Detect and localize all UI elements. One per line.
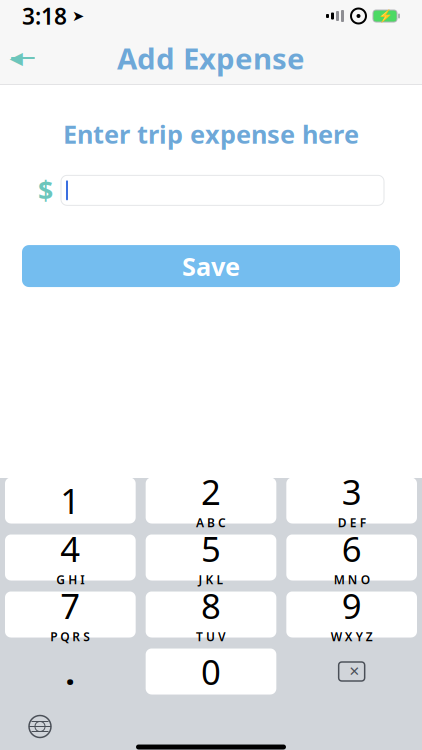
staticText: 5 [201, 525, 221, 571]
staticText: M N O [334, 572, 370, 587]
staticText: J K L [198, 572, 223, 587]
staticText: 1 [60, 477, 80, 523]
staticText: ⚡ [377, 9, 392, 23]
button[interactable]: 3 [286, 477, 417, 523]
staticText: ◀ [9, 48, 22, 68]
staticText: 3 [342, 468, 362, 514]
button[interactable]: Back [0, 38, 46, 78]
staticText: T U V [196, 629, 226, 644]
button[interactable]: 1 [5, 477, 136, 523]
button[interactable]: 0 [146, 648, 276, 694]
staticText: A B C [196, 515, 226, 530]
button[interactable]: 9 [286, 591, 417, 637]
button[interactable]: 5 [146, 534, 276, 580]
staticText: 3:18 [22, 1, 67, 31]
staticText: 0 [201, 648, 221, 694]
staticText: 9 [342, 582, 362, 628]
button[interactable]: 6 [286, 534, 417, 580]
button[interactable]: Delete [286, 648, 417, 694]
button[interactable]: Next keyboard [18, 706, 62, 746]
staticText: W X Y Z [331, 629, 373, 644]
staticText: ✕ [349, 664, 360, 679]
staticText: Enter trip expense here [63, 117, 359, 151]
staticText: ➤ [72, 8, 84, 24]
staticText: Add Expense [117, 38, 305, 77]
staticText: . [65, 648, 75, 694]
staticText: 8 [201, 582, 221, 628]
staticText: D E F [338, 515, 366, 530]
staticText: 4 [60, 525, 80, 571]
button[interactable]: 4 [5, 534, 136, 580]
staticText: 6 [342, 525, 362, 571]
staticText: G H I [56, 572, 84, 587]
button[interactable]: 7 [5, 591, 136, 637]
button[interactable]: Save [22, 245, 400, 287]
button[interactable]: 8 [146, 591, 276, 637]
staticText: 7 [60, 582, 80, 628]
staticText: $ [38, 173, 53, 208]
button[interactable]: . [5, 648, 136, 694]
staticText: Save [182, 249, 240, 283]
staticText: P Q R S [50, 629, 90, 644]
staticText: 2 [201, 468, 221, 514]
button[interactable]: 2 [146, 477, 276, 523]
